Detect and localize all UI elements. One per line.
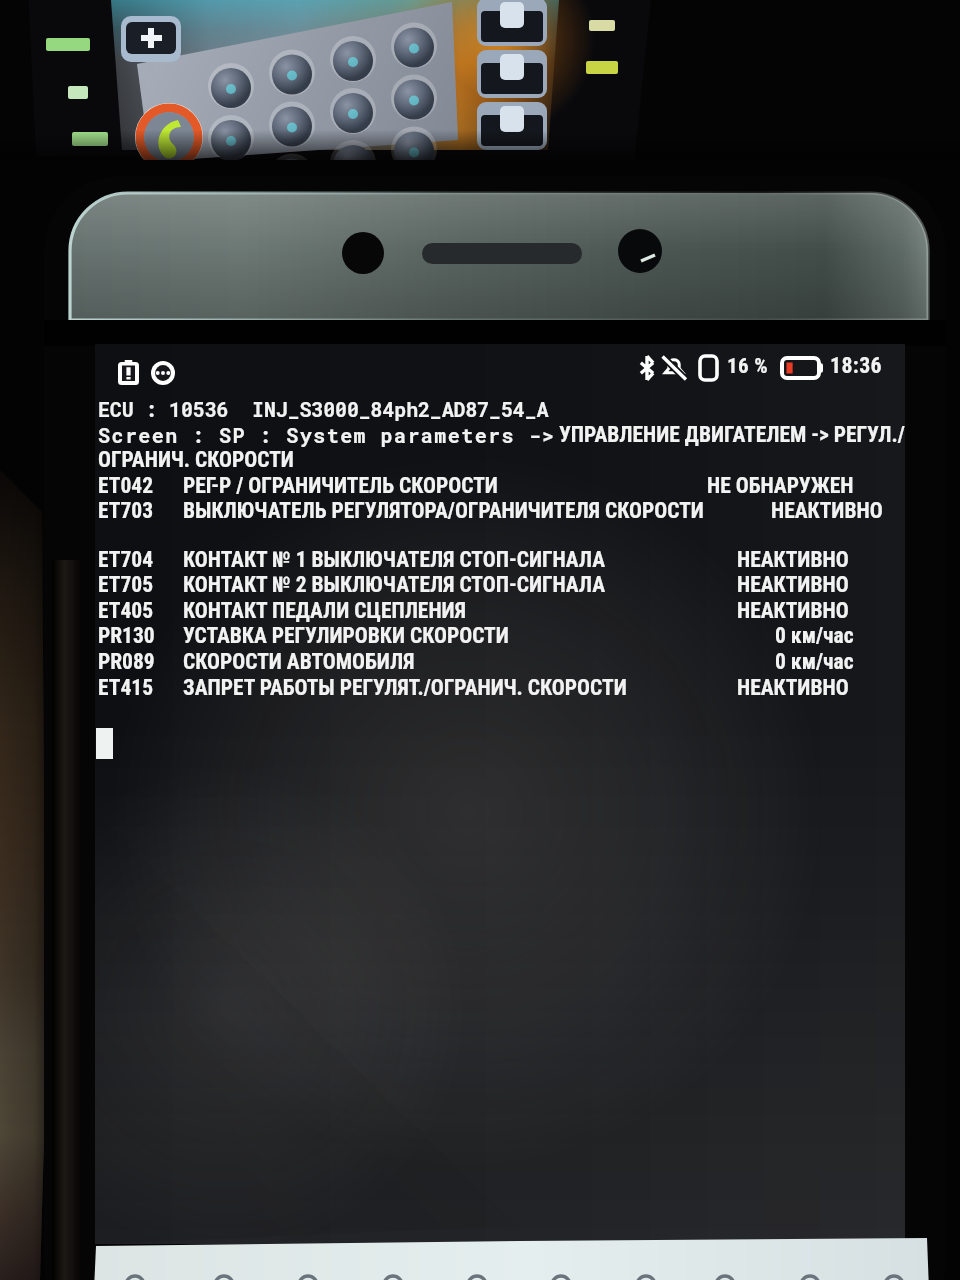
button[interactable]: Battery alert notification: [118, 360, 139, 385]
button[interactable]: PR089: [95, 649, 905, 675]
staticText: КОНТАКТ № 2 ВЫКЛЮЧАТЕЛЯ СТОП-СИГНАЛА: [183, 572, 606, 597]
button[interactable]: More notifications: [151, 361, 175, 385]
staticText: ET042: [98, 473, 154, 498]
staticText: ET703: [98, 498, 154, 523]
staticText: УПРАВЛЕНИЕ ДВИГАТЕЛЕМ -> РЕГУЛ./: [559, 422, 905, 447]
staticText: НЕАКТИВНО: [737, 675, 849, 700]
staticText: НЕАКТИВНО: [737, 598, 849, 623]
staticText: Screen : SP : System parameters ->: [98, 422, 556, 448]
button[interactable]: ET705: [95, 572, 905, 598]
staticText: НЕАКТИВНО: [737, 547, 849, 572]
staticText: НЕ ОБНАРУЖЕН: [707, 473, 854, 498]
staticText: НЕАКТИВНО: [737, 572, 849, 597]
staticText: УСТАВКА РЕГУЛИРОВКИ СКОРОСТИ: [183, 623, 509, 648]
staticText: ВЫКЛЮЧАТЕЛЬ РЕГУЛЯТОРА/ОГРАНИЧИТЕЛЯ СКОР…: [183, 498, 704, 523]
button[interactable]: ET703: [95, 498, 905, 524]
staticText: ECU : 10536 INJ_S3000_84ph2_AD87_54_A: [98, 396, 549, 422]
button[interactable]: ET415: [95, 675, 905, 701]
staticText: КОНТАКТ № 1 ВЫКЛЮЧАТЕЛЯ СТОП-СИГНАЛА: [183, 547, 606, 572]
button[interactable]: ET405: [95, 598, 905, 624]
staticText: СКОРОСТИ АВТОМОБИЛЯ: [183, 649, 415, 674]
staticText: 16 %: [727, 354, 769, 379]
staticText: ОГРАНИЧ. СКОРОСТИ: [98, 447, 294, 472]
staticText: КОНТАКТ ПЕДАЛИ СЦЕПЛЕНИЯ: [183, 598, 466, 623]
staticText: 0 км/час: [775, 649, 854, 674]
staticText: ЗАПРЕТ РАБОТЫ РЕГУЛЯТ./ОГРАНИЧ. СКОРОСТИ: [183, 675, 627, 700]
staticText: ET405: [98, 598, 154, 623]
staticText: ET704: [98, 547, 154, 572]
button[interactable]: PR130: [95, 623, 905, 649]
staticText: PR130: [98, 623, 155, 648]
staticText: PR089: [98, 649, 155, 674]
button[interactable]: ET042: [95, 473, 905, 499]
staticText: 0 км/час: [775, 623, 854, 648]
staticText: РЕГ-Р / ОГРАНИЧИТЕЛЬ СКОРОСТИ: [183, 473, 498, 498]
button[interactable]: ET704: [95, 547, 905, 573]
staticText: ET415: [98, 675, 154, 700]
staticText: ET705: [98, 572, 154, 597]
staticText: НЕАКТИВНО: [771, 498, 883, 523]
staticText: 18:36: [830, 353, 883, 379]
